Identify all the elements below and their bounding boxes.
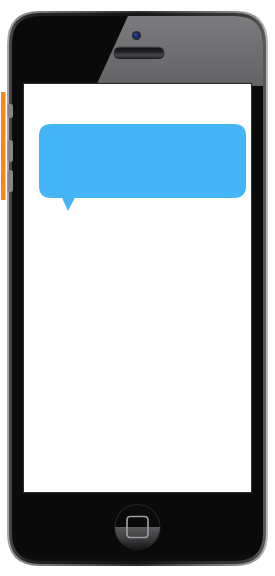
button[interactable]: Message bubble (0, 0, 275, 576)
